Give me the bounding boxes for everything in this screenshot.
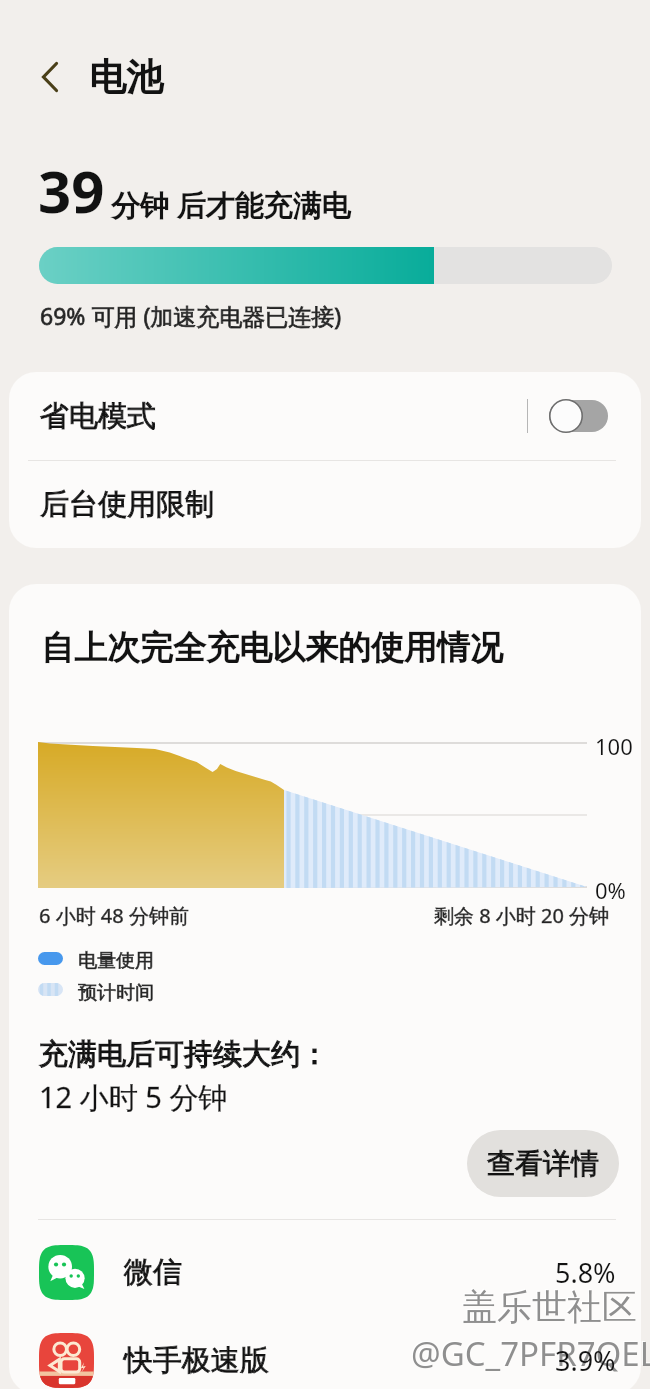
staticText: 快手极速版 <box>124 1342 269 1379</box>
staticText: 电量使用 <box>78 949 154 973</box>
staticText: 查看详情 <box>487 1146 599 1181</box>
button[interactable]: 省电模式 <box>9 372 641 460</box>
staticText: 自上次完全充电以来的使用情况 <box>41 627 503 669</box>
staticText: @GC_7PFR7QEL <box>411 1331 650 1376</box>
staticText: 查看详情 <box>487 1146 599 1181</box>
staticText: 省电模式 <box>40 398 156 435</box>
staticText: 剩余 8 小时 20 分钟 <box>434 902 610 929</box>
staticText: 100 <box>595 731 633 761</box>
staticText: 电池 <box>89 54 163 101</box>
staticText: 12 小时 5 分钟 <box>39 1077 228 1117</box>
staticText: 预计时间 <box>78 981 154 1005</box>
button[interactable]: 快手极速版 <box>9 1316 641 1389</box>
staticText: 6 小时 48 分钟前 <box>39 902 189 929</box>
staticText: 6 小时 48 分钟前 <box>39 902 189 929</box>
staticText: 剩余 8 小时 20 分钟 <box>434 902 610 929</box>
button[interactable]: 微信 <box>9 1228 641 1316</box>
staticText: 省电模式 <box>40 398 156 435</box>
staticText: 快手极速版 <box>124 1342 269 1379</box>
staticText: 微信 <box>124 1254 182 1291</box>
staticText: 微信 <box>124 1254 182 1291</box>
button[interactable]: 查看详情 <box>467 1130 619 1197</box>
staticText: 后台使用限制 <box>40 486 214 523</box>
staticText: 分钟 后才能充满电 <box>111 185 351 225</box>
staticText: 12 小时 5 分钟 <box>39 1077 228 1117</box>
button[interactable]: 后台使用限制 <box>9 461 641 548</box>
button[interactable]: 省电模式 开关 <box>549 399 608 433</box>
staticText: 39 <box>38 151 105 230</box>
staticText: 后台使用限制 <box>40 486 214 523</box>
staticText: 0% <box>595 875 626 905</box>
staticText: 5.8% <box>555 1254 616 1291</box>
staticText: @GC_7PFR7QEL <box>410 1330 650 1375</box>
staticText: 充满电后可持续大约： <box>39 1036 329 1073</box>
staticText: 盖乐世社区 <box>461 1284 636 1328</box>
staticText: 预计时间 <box>78 981 154 1005</box>
staticText: 充满电后可持续大约： <box>39 1036 329 1073</box>
staticText: 3.9% <box>555 1342 616 1379</box>
staticText: 69% 可用 (加速充电器已连接) <box>40 300 342 331</box>
staticText: 盖乐世社区 <box>462 1285 637 1329</box>
staticText: 电量使用 <box>78 949 154 973</box>
button[interactable]: Back <box>21 48 79 106</box>
staticText: 69% 可用 (加速充电器已连接) <box>40 300 342 331</box>
